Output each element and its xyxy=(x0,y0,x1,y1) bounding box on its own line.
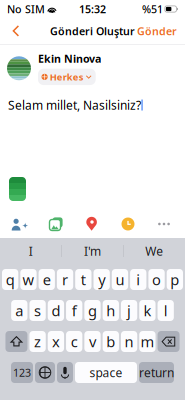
staticText: z xyxy=(34,332,41,351)
staticText: j xyxy=(127,301,131,320)
button[interactable]: j xyxy=(121,300,137,321)
button[interactable]: We xyxy=(124,238,185,264)
button[interactable]: Next keyboard xyxy=(35,362,55,383)
button[interactable]: Add activity xyxy=(115,215,141,233)
button[interactable]: b xyxy=(103,331,119,352)
button[interactable]: q xyxy=(2,269,18,290)
button[interactable]: Dictation xyxy=(57,362,73,383)
button[interactable]: k xyxy=(139,300,155,321)
button[interactable]: p xyxy=(167,269,183,290)
staticText: g xyxy=(88,301,97,320)
button[interactable]: Add location xyxy=(79,215,105,233)
button[interactable]: d xyxy=(48,300,64,321)
staticText: v xyxy=(89,332,96,351)
staticText: Gönder xyxy=(137,24,177,38)
button[interactable]: s xyxy=(29,300,46,321)
button[interactable]: Back xyxy=(5,20,27,42)
staticText: u xyxy=(115,270,124,289)
staticText: 15:32 xyxy=(79,2,106,16)
button[interactable]: Herkes xyxy=(38,69,96,85)
staticText: o xyxy=(152,270,161,289)
staticText: i xyxy=(136,270,140,289)
button[interactable]: v xyxy=(84,331,101,352)
staticText: %51 xyxy=(142,2,163,16)
button[interactable]: w xyxy=(20,269,37,290)
staticText: Herkes xyxy=(50,71,84,83)
button[interactable]: t xyxy=(75,269,91,290)
staticText: l xyxy=(164,301,168,320)
button[interactable]: o xyxy=(148,269,165,290)
staticText: h xyxy=(106,301,115,320)
button[interactable]: I'm xyxy=(62,238,123,264)
staticText: We xyxy=(145,243,163,259)
button[interactable]: y xyxy=(93,269,110,290)
staticText: 123 xyxy=(13,365,31,380)
button[interactable]: g xyxy=(84,300,101,321)
staticText: q xyxy=(6,270,15,289)
button[interactable]: x xyxy=(48,331,64,352)
staticText: Gönderi Oluştur xyxy=(50,24,135,38)
button[interactable]: f xyxy=(66,300,82,321)
staticText: s xyxy=(34,301,41,320)
button[interactable]: Gönder xyxy=(132,20,180,42)
button[interactable]: u xyxy=(112,269,128,290)
staticText: n xyxy=(125,332,134,351)
button[interactable]: h xyxy=(103,300,119,321)
staticText: d xyxy=(51,301,60,320)
button[interactable]: I xyxy=(0,238,61,264)
staticText: a xyxy=(15,301,23,320)
staticText: space xyxy=(89,364,122,380)
staticText: No SIM xyxy=(7,2,45,16)
button[interactable]: Tag people xyxy=(7,215,33,233)
button[interactable]: Shift xyxy=(5,331,27,352)
staticText: Ekin Ninova xyxy=(38,51,101,66)
staticText: x xyxy=(52,332,60,351)
button[interactable]: a xyxy=(11,300,27,321)
button[interactable]: e xyxy=(39,269,55,290)
staticText: t xyxy=(81,270,86,289)
button[interactable]: 123 xyxy=(11,362,33,383)
staticText: f xyxy=(72,301,77,320)
button[interactable]: c xyxy=(66,331,82,352)
staticText: c xyxy=(71,332,78,351)
staticText: w xyxy=(22,270,34,289)
button[interactable]: z xyxy=(29,331,46,352)
button[interactable]: l xyxy=(158,300,174,321)
button[interactable]: r xyxy=(57,269,73,290)
staticText: return xyxy=(139,364,174,380)
staticText: I xyxy=(29,243,33,259)
staticText: p xyxy=(170,270,179,289)
button[interactable]: n xyxy=(121,331,137,352)
button[interactable]: m xyxy=(139,331,155,352)
staticText: k xyxy=(143,301,151,320)
staticText: y xyxy=(98,270,105,289)
button[interactable]: i xyxy=(130,269,146,290)
button[interactable]: Delete xyxy=(158,331,180,352)
button[interactable]: return xyxy=(139,362,174,383)
button[interactable]: More xyxy=(151,215,177,233)
button[interactable]: space xyxy=(75,362,137,383)
staticText: m xyxy=(140,332,154,351)
button[interactable]: Add photo xyxy=(43,215,69,233)
staticText: e xyxy=(43,270,51,289)
staticText: b xyxy=(106,332,115,351)
staticText: I'm xyxy=(84,243,101,259)
staticText: Selam millet, Nasilsiniz? xyxy=(8,97,141,113)
staticText: r xyxy=(62,270,68,289)
